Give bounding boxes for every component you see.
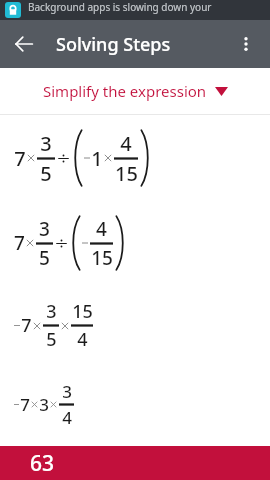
staticText: 3 (40, 130, 52, 157)
staticText: 7 (20, 393, 30, 416)
staticText: 3 (39, 393, 49, 416)
button[interactable]: More options (226, 24, 266, 64)
staticText: 15 (91, 245, 113, 271)
staticText: 15 (72, 299, 93, 324)
button[interactable]: 7 (0, 115, 270, 200)
button[interactable]: 7 (0, 365, 270, 443)
staticText: 3 (62, 380, 72, 403)
staticText: 1 (91, 145, 103, 172)
staticText: 7 (14, 230, 25, 256)
staticText: 4 (62, 406, 72, 429)
staticText: Solving Steps (56, 32, 171, 57)
staticText: 4 (96, 216, 107, 242)
staticText: 4 (77, 327, 88, 352)
button[interactable]: Back (4, 24, 44, 64)
staticText: 5 (46, 327, 57, 352)
staticText: 4 (120, 130, 132, 157)
staticText: 7 (14, 145, 26, 172)
button[interactable]: 63 (0, 446, 270, 480)
staticText: Simplify the expression (43, 81, 207, 101)
staticText: 5 (39, 245, 50, 271)
staticText: 3 (39, 216, 50, 242)
staticText: Background apps is slowing down your (28, 0, 212, 14)
button[interactable]: 7 (0, 200, 270, 285)
button[interactable]: Simplify the expression (0, 68, 270, 114)
staticText: 63 (30, 449, 55, 478)
staticText: 7 (21, 313, 32, 338)
staticText: 5 (40, 160, 52, 187)
staticText: 3 (46, 299, 57, 324)
staticText: 15 (115, 160, 138, 187)
button[interactable]: 7 (0, 285, 270, 365)
